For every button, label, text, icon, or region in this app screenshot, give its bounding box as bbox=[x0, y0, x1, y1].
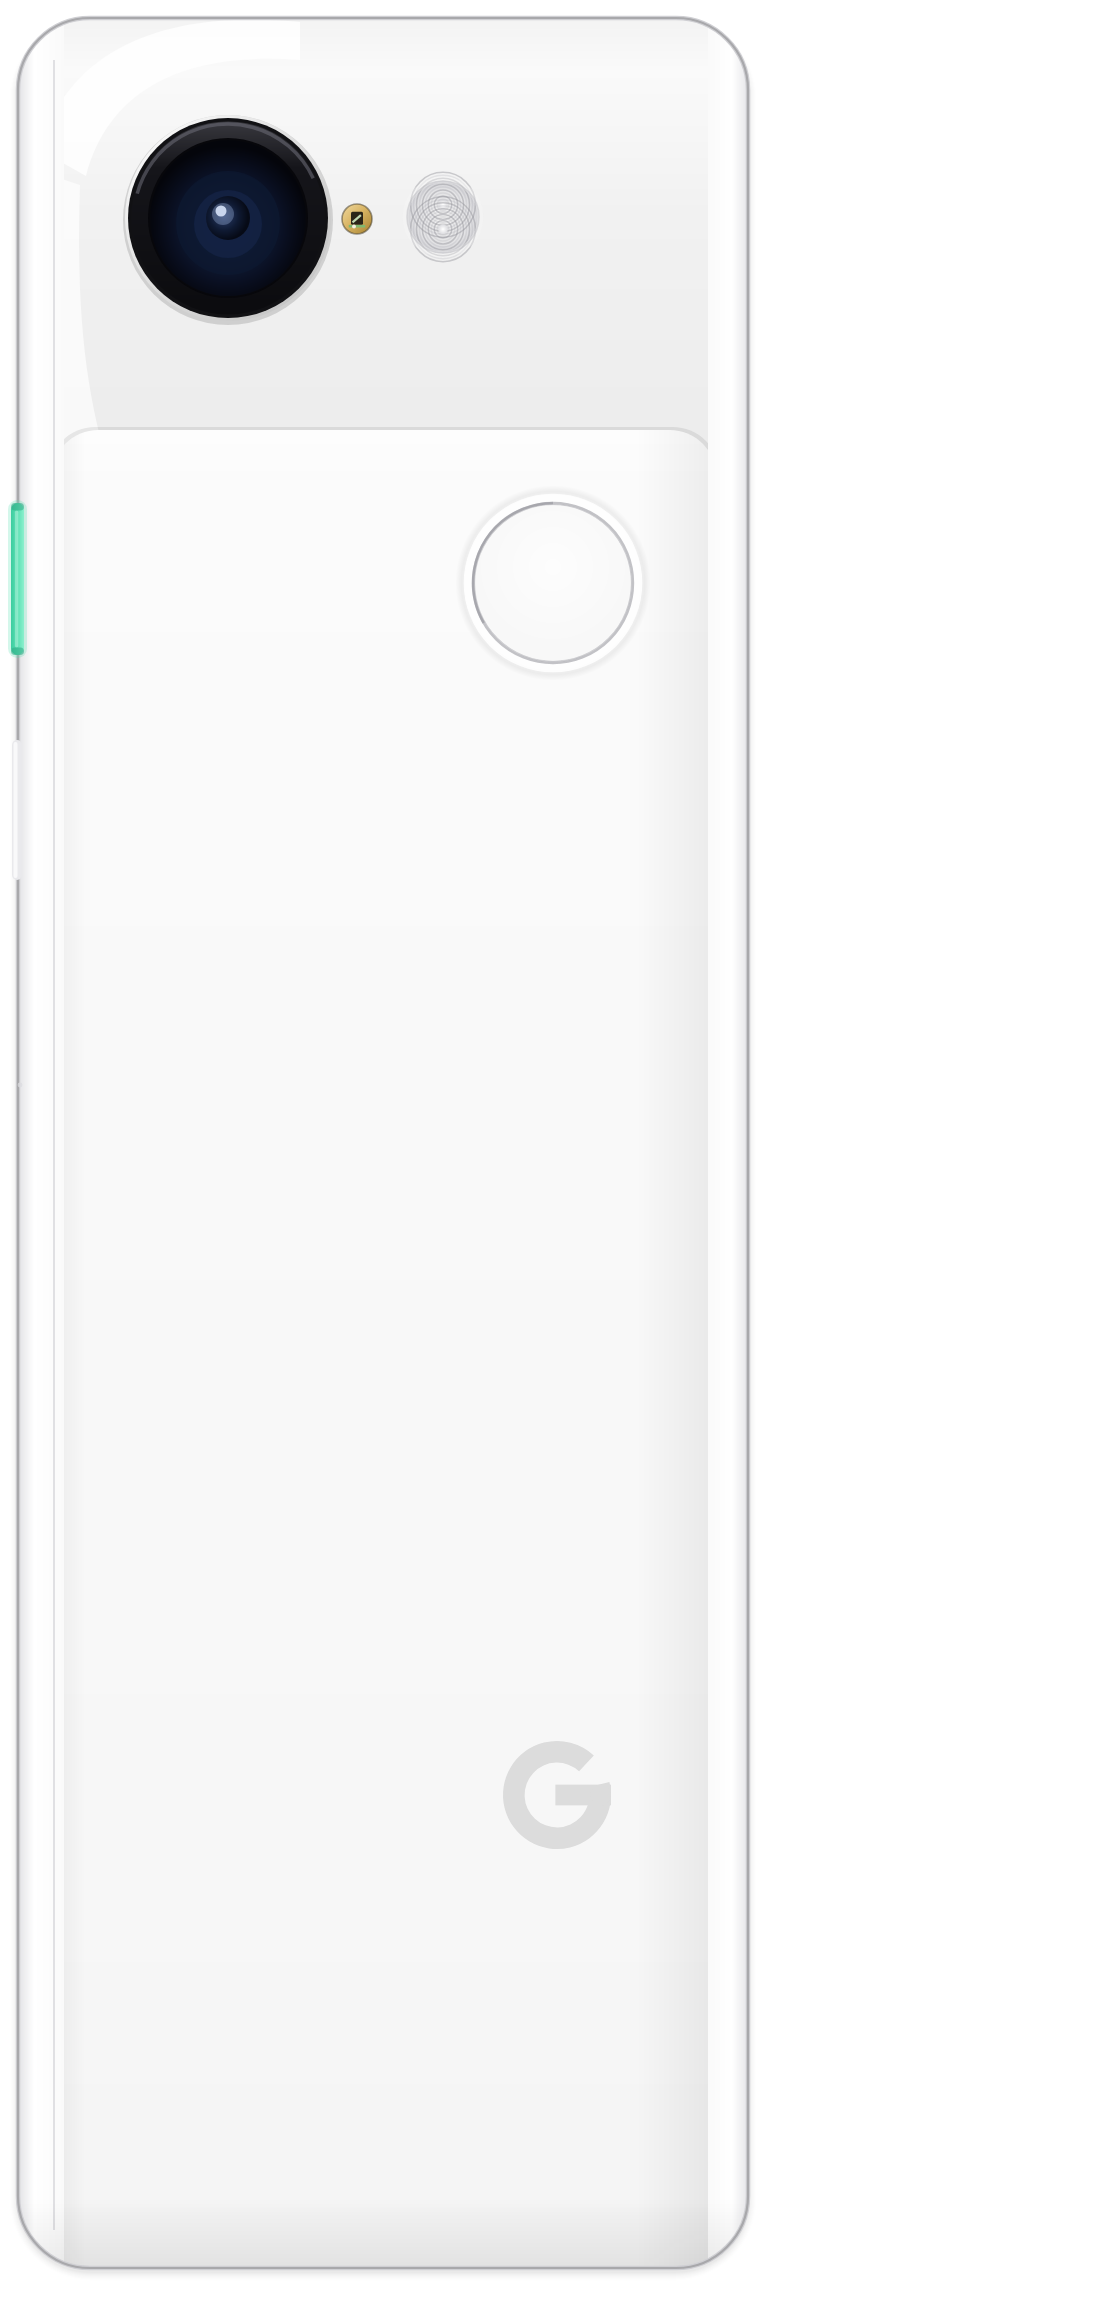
button[interactable]: Google Pixel 3 phone, rear view, Clearly… bbox=[0, 0, 1100, 2303]
